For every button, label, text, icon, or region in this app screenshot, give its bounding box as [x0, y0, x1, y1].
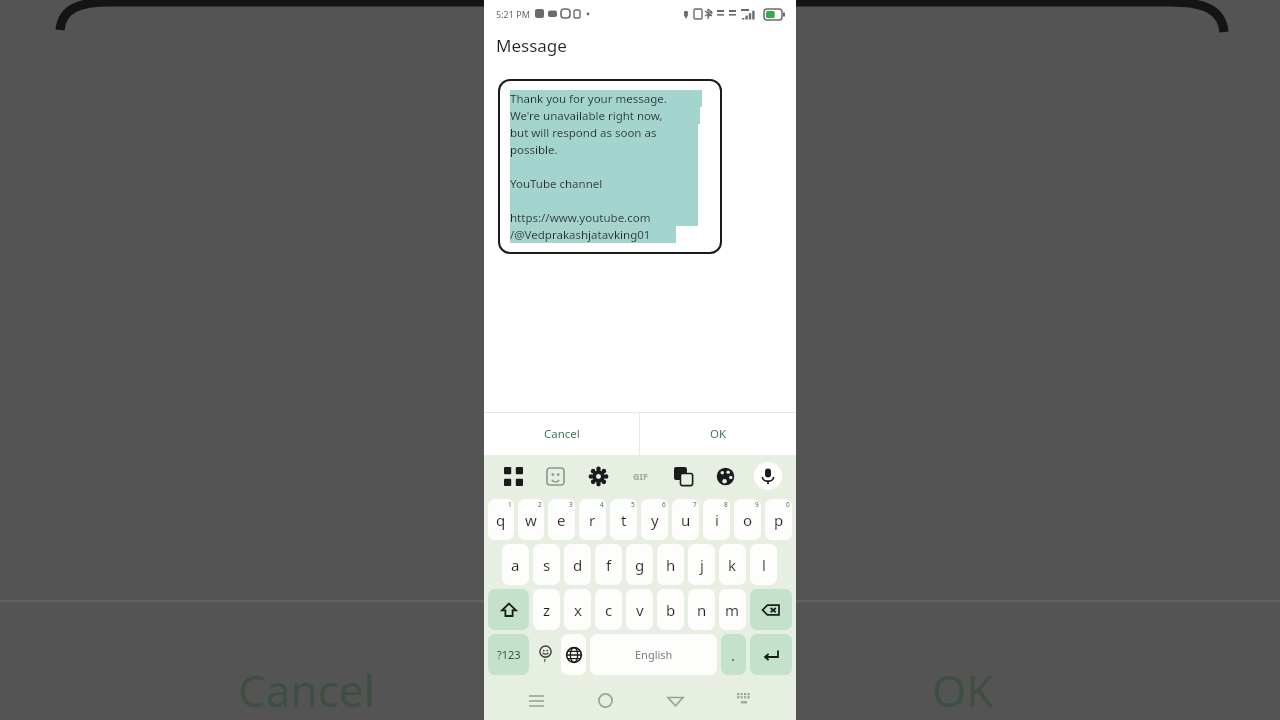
button[interactable]: Translate — [669, 462, 697, 490]
button[interactable]: Home — [588, 683, 622, 717]
button[interactable]: l — [750, 544, 777, 585]
staticText: English — [635, 647, 673, 662]
button[interactable]: g — [626, 544, 653, 585]
button[interactable]: Recents — [519, 683, 553, 717]
button[interactable]: Settings — [584, 462, 612, 490]
staticText: w — [525, 510, 537, 530]
staticText: Cancel — [544, 426, 580, 442]
button[interactable]: u — [672, 499, 699, 540]
staticText: j — [700, 555, 704, 575]
button[interactable]: m — [719, 589, 746, 630]
button[interactable]: Back — [658, 683, 692, 717]
staticText: 2 — [538, 500, 542, 509]
button[interactable]: Cancel — [484, 413, 639, 455]
staticText: d — [573, 555, 583, 575]
staticText: OK — [710, 426, 727, 442]
staticText: h — [666, 555, 676, 575]
staticText: e — [557, 510, 566, 530]
staticText: 8 — [724, 500, 728, 509]
button[interactable]: Language — [561, 634, 586, 675]
button[interactable]: i — [703, 499, 730, 540]
staticText: OK — [932, 660, 994, 720]
button[interactable]: Stickers — [541, 462, 569, 490]
staticText: possible. — [510, 142, 558, 158]
button[interactable]: q — [488, 499, 514, 540]
button[interactable]: x — [564, 589, 591, 630]
button[interactable]: k — [719, 544, 746, 585]
staticText: u — [681, 510, 691, 530]
staticText: p — [774, 510, 784, 530]
button[interactable]: Emoji — [533, 634, 557, 675]
staticText: f — [606, 555, 612, 575]
button[interactable]: n — [688, 589, 715, 630]
staticText: z — [543, 600, 551, 620]
staticText: 7 — [693, 500, 697, 509]
staticText: a — [511, 555, 520, 575]
button[interactable]: p — [765, 499, 792, 540]
button[interactable]: English — [590, 634, 717, 675]
button[interactable]: h — [657, 544, 684, 585]
button[interactable]: Backspace — [750, 589, 792, 630]
button[interactable]: o — [734, 499, 761, 540]
staticText: s — [543, 555, 551, 575]
button[interactable]: Enter — [750, 634, 792, 675]
staticText: 1 — [508, 500, 512, 509]
button[interactable]: OK — [640, 413, 796, 455]
staticText: y — [651, 510, 659, 530]
staticText: n — [697, 600, 707, 620]
button[interactable]: Apps — [499, 462, 527, 490]
button[interactable]: d — [564, 544, 591, 585]
button[interactable]: ?123 — [488, 634, 529, 675]
staticText: 4 — [600, 500, 604, 509]
button[interactable]: Themes — [711, 462, 739, 490]
staticText: https://www.youtube.com — [510, 210, 651, 226]
button[interactable]: Thank you for your message. — [510, 90, 710, 243]
button[interactable]: e — [548, 499, 575, 540]
button[interactable]: . — [721, 634, 746, 675]
staticText: 5 — [631, 500, 635, 509]
staticText: l — [762, 555, 766, 575]
staticText: ?123 — [497, 647, 521, 662]
staticText: r — [589, 510, 596, 530]
button[interactable]: r — [579, 499, 606, 540]
button[interactable]: y — [641, 499, 668, 540]
staticText: Thank you for your message. — [510, 91, 667, 107]
button[interactable]: Keyboard switch — [727, 683, 761, 717]
button[interactable]: t — [610, 499, 637, 540]
button[interactable]: z — [533, 589, 560, 630]
staticText: . — [731, 645, 736, 665]
button[interactable]: f — [595, 544, 622, 585]
staticText: Message — [496, 34, 567, 57]
staticText: We're unavailable right now, — [510, 108, 663, 124]
staticText: k — [728, 555, 737, 575]
button[interactable]: a — [502, 544, 529, 585]
staticText: but will respond as soon as — [510, 125, 657, 141]
staticText: 6 — [662, 500, 666, 509]
staticText: q — [496, 510, 506, 530]
staticText: g — [635, 555, 645, 575]
button[interactable]: GIF — [626, 462, 654, 490]
button[interactable]: Shift — [488, 589, 529, 630]
staticText: YouTube channel — [510, 176, 603, 192]
button[interactable]: w — [518, 499, 544, 540]
staticText: i — [715, 510, 719, 530]
staticText: Cancel — [238, 660, 375, 720]
button[interactable]: Voice input — [754, 462, 782, 490]
staticText: 9 — [755, 500, 759, 509]
button[interactable]: s — [533, 544, 560, 585]
button[interactable]: b — [657, 589, 684, 630]
staticText: 0 — [786, 500, 790, 509]
staticText: GIF — [633, 470, 648, 482]
staticText: b — [666, 600, 676, 620]
staticText: /@Vedprakashjatavking01 — [510, 227, 651, 243]
staticText: o — [743, 510, 753, 530]
staticText: c — [605, 600, 613, 620]
staticText: m — [725, 600, 740, 620]
staticText: x — [574, 600, 582, 620]
staticText: t — [621, 510, 627, 530]
button[interactable]: j — [688, 544, 715, 585]
staticText: 5:21 PM — [496, 8, 530, 20]
staticText: v — [636, 600, 644, 620]
button[interactable]: v — [626, 589, 653, 630]
button[interactable]: c — [595, 589, 622, 630]
